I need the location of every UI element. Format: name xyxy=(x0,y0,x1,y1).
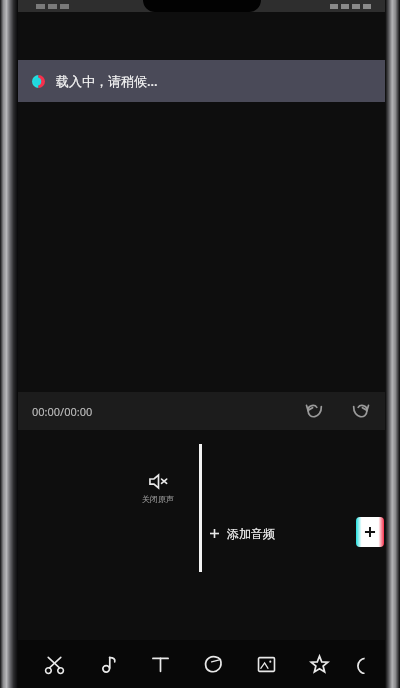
button[interactable]: Audio xyxy=(81,640,134,688)
button[interactable]: Edit xyxy=(28,640,81,688)
button[interactable]: 关闭原声 xyxy=(138,470,178,508)
button[interactable]: Text xyxy=(134,640,187,688)
staticText: 添加音频 xyxy=(227,526,275,541)
button[interactable]: Effects xyxy=(293,640,346,688)
button[interactable]: Filter xyxy=(346,640,385,688)
staticText: 关闭原声 xyxy=(142,494,174,504)
button[interactable]: Add clip xyxy=(356,517,384,547)
button[interactable]: Undo xyxy=(301,398,327,424)
staticText: 载入中，请稍候... xyxy=(56,72,158,90)
button[interactable]: Redo xyxy=(347,398,373,424)
button[interactable]: Sticker xyxy=(187,640,240,688)
button[interactable]: 载入中，请稍候... xyxy=(18,60,385,102)
button[interactable]: 添加音频 xyxy=(206,522,279,545)
staticText: 00:00/00:00 xyxy=(32,404,93,419)
button[interactable]: Overlay xyxy=(240,640,293,688)
